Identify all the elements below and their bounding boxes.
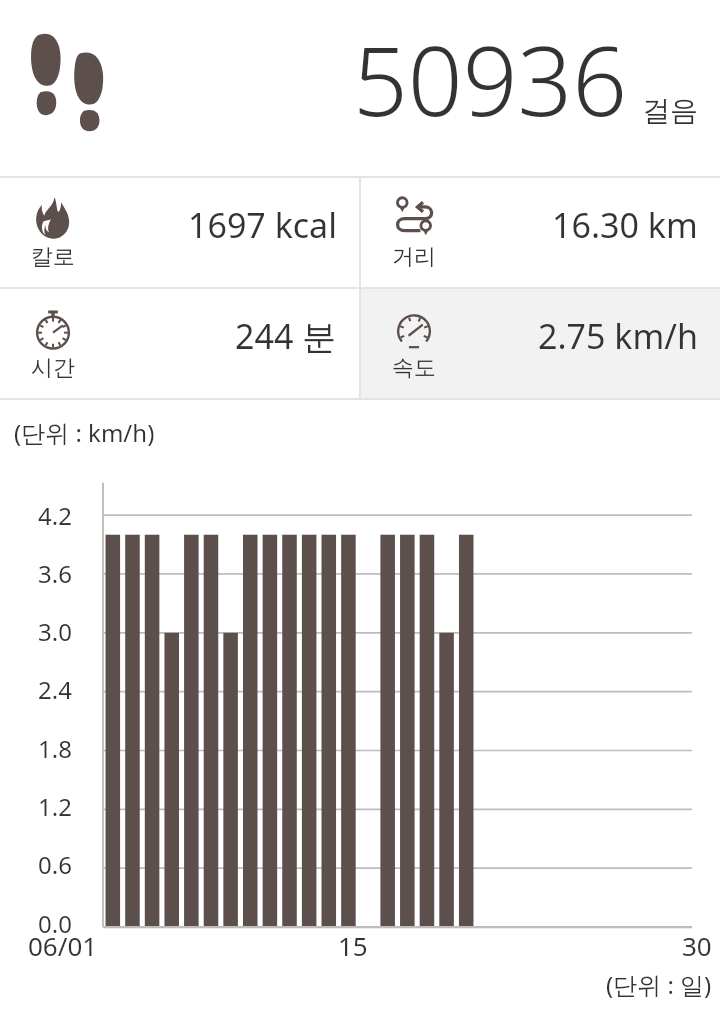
button[interactable]: (단위 : km/h) bbox=[0, 400, 720, 1026]
staticText: 1697 kcal bbox=[188, 202, 337, 248]
staticText: 거리 bbox=[392, 243, 436, 271]
staticText: 걸음 bbox=[642, 93, 698, 128]
staticText: 3.0 bbox=[38, 615, 72, 648]
button[interactable]: Distance bbox=[361, 178, 720, 287]
staticText: 2.4 bbox=[38, 673, 72, 706]
staticText: 50936 bbox=[353, 13, 628, 144]
other: Calories bbox=[30, 195, 76, 241]
staticText: 시간 bbox=[31, 354, 75, 382]
other: Speed bbox=[391, 306, 437, 352]
staticText: 1.2 bbox=[38, 790, 72, 823]
staticText: 16.30 km bbox=[552, 202, 698, 248]
staticText: 1.8 bbox=[38, 732, 72, 765]
staticText: 칼로 bbox=[31, 243, 75, 271]
staticText: (단위 : km/h) bbox=[14, 416, 155, 449]
staticText: 06/01 bbox=[28, 928, 98, 963]
staticText: 3.6 bbox=[38, 557, 72, 590]
other: Time bbox=[30, 306, 76, 352]
button[interactable]: Steps bbox=[0, 0, 720, 176]
staticText: 244 분 bbox=[235, 313, 337, 359]
staticText: 0.0 bbox=[38, 907, 72, 940]
other: Distance bbox=[391, 195, 437, 241]
staticText: 속도 bbox=[392, 354, 436, 382]
button[interactable]: Calories bbox=[0, 178, 359, 287]
staticText: 4.2 bbox=[38, 499, 72, 532]
button[interactable]: Time bbox=[0, 289, 359, 398]
staticText: 30 bbox=[682, 928, 712, 963]
staticText: (단위 : 일) bbox=[606, 968, 712, 1001]
button[interactable]: Speed bbox=[361, 289, 720, 398]
staticText: 0.6 bbox=[38, 848, 72, 881]
staticText: 15 bbox=[338, 928, 368, 963]
other: Steps bbox=[24, 24, 120, 128]
staticText: 2.75 km/h bbox=[538, 313, 698, 359]
